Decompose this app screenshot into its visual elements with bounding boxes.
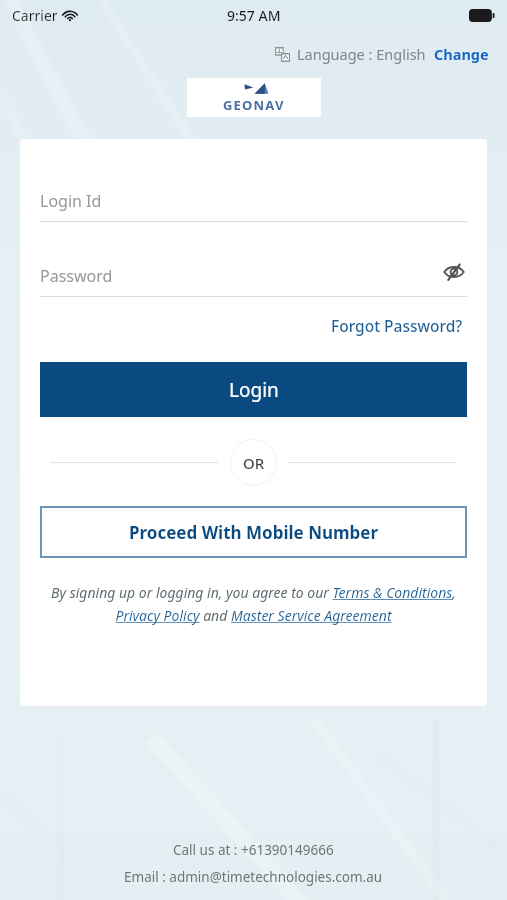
staticText: Call us at : +61390149666 [173, 841, 334, 859]
button[interactable]: Change [434, 44, 489, 64]
button[interactable]: Proceed With Mobile Number [40, 506, 467, 558]
staticText: Language : English [297, 44, 426, 64]
button[interactable]: Password [40, 256, 467, 296]
staticText: Password [40, 265, 113, 287]
staticText: Forgot Password? [331, 315, 463, 336]
button[interactable]: Login Id [40, 181, 467, 221]
button[interactable]: Forgot Password? [327, 311, 467, 340]
staticText: Proceed With Mobile Number [129, 521, 379, 544]
staticText: Change [434, 44, 489, 64]
staticText: Login [229, 377, 279, 403]
staticText: Login Id [40, 190, 102, 212]
staticText: Email : admin@timetechnologies.com.au [124, 868, 383, 886]
staticText: OR [243, 453, 265, 473]
button[interactable]: Show password [441, 259, 467, 285]
button[interactable]: By signing up or logging in, you agree t… [40, 583, 467, 625]
staticText: 9:57 AM [227, 6, 281, 25]
button[interactable]: Login [40, 362, 467, 417]
staticText: Carrier [12, 6, 58, 25]
staticText: GEONAV [223, 96, 285, 114]
staticText: By signing up or logging in, you agree t… [40, 583, 467, 625]
